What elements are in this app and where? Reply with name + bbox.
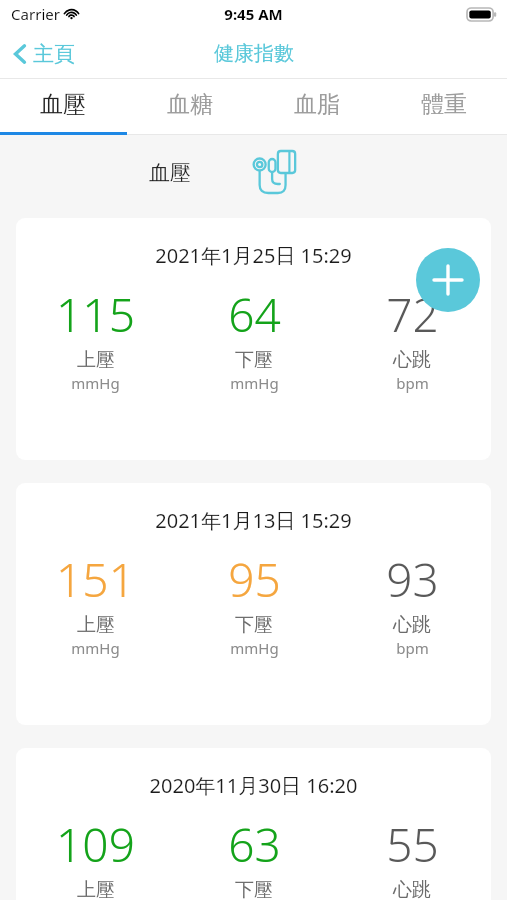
button[interactable]: Add new reading: [416, 248, 480, 312]
staticText: 95: [228, 548, 281, 611]
staticText: mmHg: [71, 373, 120, 393]
staticText: 93: [386, 548, 439, 611]
staticText: 體重: [421, 90, 467, 119]
staticText: 血糖: [167, 90, 213, 119]
staticText: 血壓: [149, 160, 191, 186]
staticText: 主頁: [33, 41, 75, 67]
staticText: Carrier: [11, 4, 60, 24]
staticText: 下壓: [235, 613, 273, 637]
staticText: 63: [228, 813, 281, 876]
staticText: 上壓: [77, 613, 115, 637]
staticText: bpm: [396, 373, 429, 393]
staticText: 心跳: [393, 613, 431, 637]
staticText: 55: [386, 813, 439, 876]
staticText: 健康指數: [214, 41, 294, 66]
staticText: 下壓: [235, 878, 273, 900]
button[interactable]: 血壓: [0, 79, 126, 135]
staticText: mmHg: [230, 373, 279, 393]
staticText: 72: [386, 283, 439, 346]
staticText: 心跳: [393, 878, 431, 900]
staticText: 下壓: [235, 348, 273, 372]
staticText: 血壓: [40, 90, 86, 119]
button[interactable]: 血脂: [253, 79, 380, 135]
button[interactable]: 體重: [380, 79, 507, 135]
staticText: 2020年11月30日 16:20: [16, 772, 491, 799]
button[interactable]: 主頁: [8, 37, 79, 71]
staticText: 上壓: [77, 878, 115, 900]
staticText: 2021年1月13日 15:29: [16, 507, 491, 534]
staticText: mmHg: [230, 638, 279, 658]
button[interactable]: 2021年1月25日 15:29: [16, 218, 491, 460]
staticText: mmHg: [71, 638, 120, 658]
staticText: bpm: [396, 638, 429, 658]
button[interactable]: 2020年11月30日 16:20: [16, 748, 491, 900]
button[interactable]: 2021年1月13日 15:29: [16, 483, 491, 725]
button[interactable]: 血糖: [126, 79, 253, 135]
staticText: 心跳: [393, 348, 431, 372]
staticText: 64: [228, 283, 281, 346]
staticText: 血脂: [294, 90, 340, 119]
staticText: 上壓: [77, 348, 115, 372]
staticText: 115: [56, 283, 135, 346]
staticText: 2021年1月25日 15:29: [16, 242, 491, 269]
staticText: 9:45 AM: [224, 4, 283, 24]
staticText: 151: [56, 548, 135, 611]
staticText: 109: [56, 813, 135, 876]
